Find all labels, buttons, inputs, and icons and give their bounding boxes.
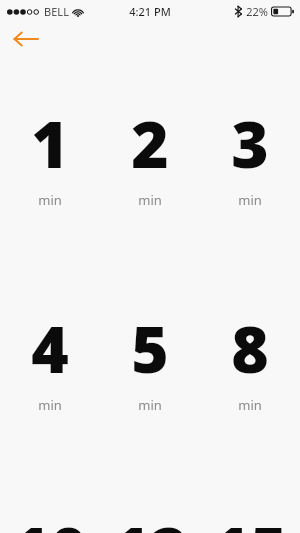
button[interactable]: 5 [100,305,200,414]
staticText: 2 [131,100,169,187]
staticText: min [238,396,262,414]
staticText: min [38,191,62,209]
staticText: 4 [31,305,69,392]
staticText: 10 [12,506,88,533]
staticText: min [238,191,262,209]
button[interactable]: 12 [100,506,200,533]
staticText: 1 [31,100,69,187]
staticText: 8 [231,305,269,392]
staticText: 15 [212,506,288,533]
button[interactable]: 4 [0,305,100,414]
staticText: BELL [44,4,69,19]
staticText: min [138,191,162,209]
staticText: min [38,396,62,414]
staticText: 4:21 PM [129,4,171,19]
button[interactable]: 2 [100,100,200,209]
staticText: 22% [246,4,268,19]
button[interactable]: 3 [200,100,300,209]
button[interactable]: 8 [200,305,300,414]
staticText: 3 [231,100,269,187]
button[interactable]: 15 [200,506,300,533]
button[interactable]: 1 [0,100,100,209]
button[interactable]: 10 [0,506,100,533]
staticText: 12 [112,506,188,533]
staticText: 5 [131,305,169,392]
button[interactable]: Back [6,24,44,54]
staticText: min [138,396,162,414]
